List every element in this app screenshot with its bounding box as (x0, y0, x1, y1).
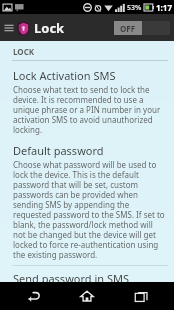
staticText: Send password in SMS (13, 271, 129, 282)
button[interactable]: Lock on off toggle (114, 20, 170, 36)
button[interactable]: Home (67, 282, 107, 310)
staticText: Choose what text to send to lock the dev… (13, 84, 166, 135)
staticText: Lock (34, 19, 65, 37)
staticText: LOCK (13, 46, 35, 57)
staticText: Lock Activation SMS (13, 68, 116, 83)
button[interactable]: Send password in SMS (0, 271, 174, 282)
button[interactable]: Lock Activation SMS (0, 67, 174, 136)
staticText: OFF (120, 23, 136, 34)
button[interactable]: Default password (0, 142, 174, 261)
other: App icon (17, 21, 30, 36)
staticText: 1:17 (156, 2, 172, 13)
button[interactable]: Recent apps (121, 282, 161, 310)
staticText: Default password (13, 143, 104, 158)
staticText: Choose what password will be used to loc… (13, 159, 166, 260)
button[interactable]: Back (14, 282, 54, 310)
button[interactable]: Navigate up (2, 21, 16, 35)
staticText: 53% (127, 3, 142, 13)
